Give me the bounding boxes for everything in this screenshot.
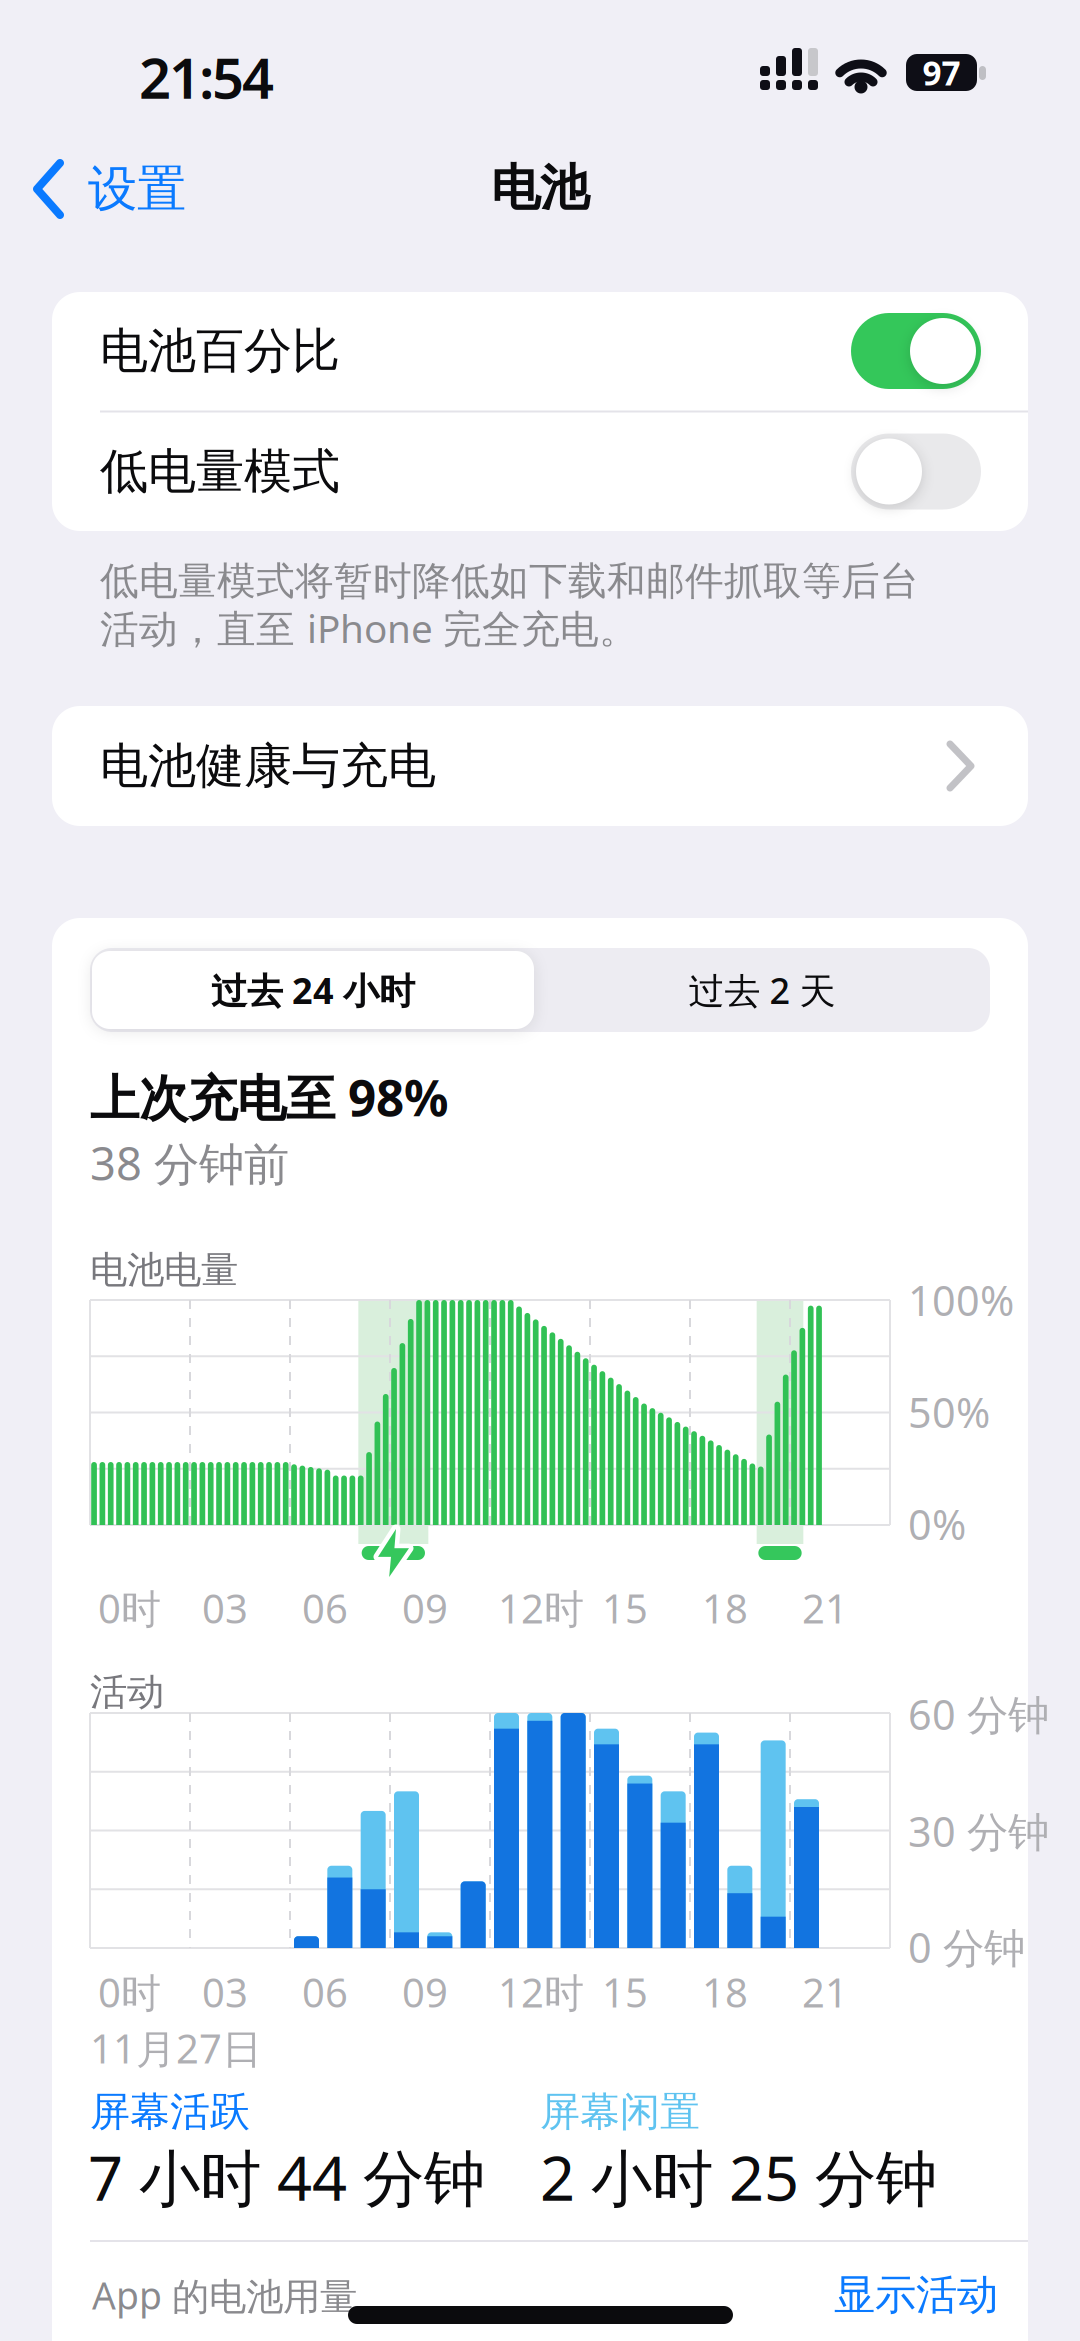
staticText: 09 [402,1965,448,2018]
staticText: 15 [602,1581,648,1634]
staticText: 过去 24 小时 [211,966,415,1014]
staticText: 21:54 [139,40,274,114]
staticText: 0时 [98,1965,161,2018]
button[interactable]: 过去 24 小时 [92,951,534,1029]
staticText: 2 小时 25 分钟 [540,2136,937,2218]
staticText: 0时 [98,1581,161,1634]
staticText: 09 [402,1581,448,1634]
staticText: 18 [702,1581,748,1634]
staticText: 上次充电至 98% [90,1064,448,1130]
staticText: 设置 [88,159,186,219]
staticText: 97 [922,50,960,95]
staticText: 100% [908,1273,1014,1327]
staticText: 过去 2 天 [688,966,835,1014]
staticText: 显示活动 [834,2270,998,2320]
staticText: 15 [602,1965,648,2018]
staticText: 7 小时 44 分钟 [88,2136,485,2218]
staticText: 30 分钟 [908,1804,1049,1858]
staticText: 电池 [491,158,589,218]
staticText: 06 [302,1581,348,1634]
staticText: 电池健康与充电 [100,736,436,795]
staticText: 60 分钟 [908,1687,1049,1741]
staticText: 活动，直至 iPhone 完全充电。 [100,602,638,654]
staticText: App 的电池用量 [92,2270,357,2320]
staticText: 活动 [90,1669,164,1715]
staticText: 屏幕闲置 [540,2087,700,2136]
staticText: 18 [702,1965,748,2018]
staticText: 0% [908,1497,966,1551]
button[interactable]: 电池健康与充电 [52,706,1028,826]
staticText: 21 [802,1965,848,2018]
staticText: 11月27日 [90,2021,262,2074]
staticText: 03 [202,1965,248,2018]
staticText: 0 分钟 [908,1920,1025,1974]
staticText: 50% [908,1385,990,1439]
staticText: 屏幕活跃 [90,2087,250,2136]
staticText: 低电量模式 [100,442,340,501]
staticText: 06 [302,1965,348,2018]
button[interactable]: 显示活动 [758,2270,998,2320]
staticText: 38 分钟前 [90,1133,289,1193]
staticText: 21 [802,1581,848,1634]
staticText: 电池电量 [90,1247,238,1293]
staticText: 12时 [498,1965,584,2018]
button[interactable]: 返回设置 [10,139,270,239]
staticText: 低电量模式将暂时降低如下载和邮件抓取等后台 [100,557,919,605]
staticText: 电池百分比 [100,321,340,380]
staticText: 03 [202,1581,248,1634]
button[interactable]: 电池百分比 [52,292,1028,410]
button[interactable]: 低电量模式 [52,412,1028,530]
staticText: 12时 [498,1581,584,1634]
button[interactable]: 过去 2 天 [540,951,984,1029]
